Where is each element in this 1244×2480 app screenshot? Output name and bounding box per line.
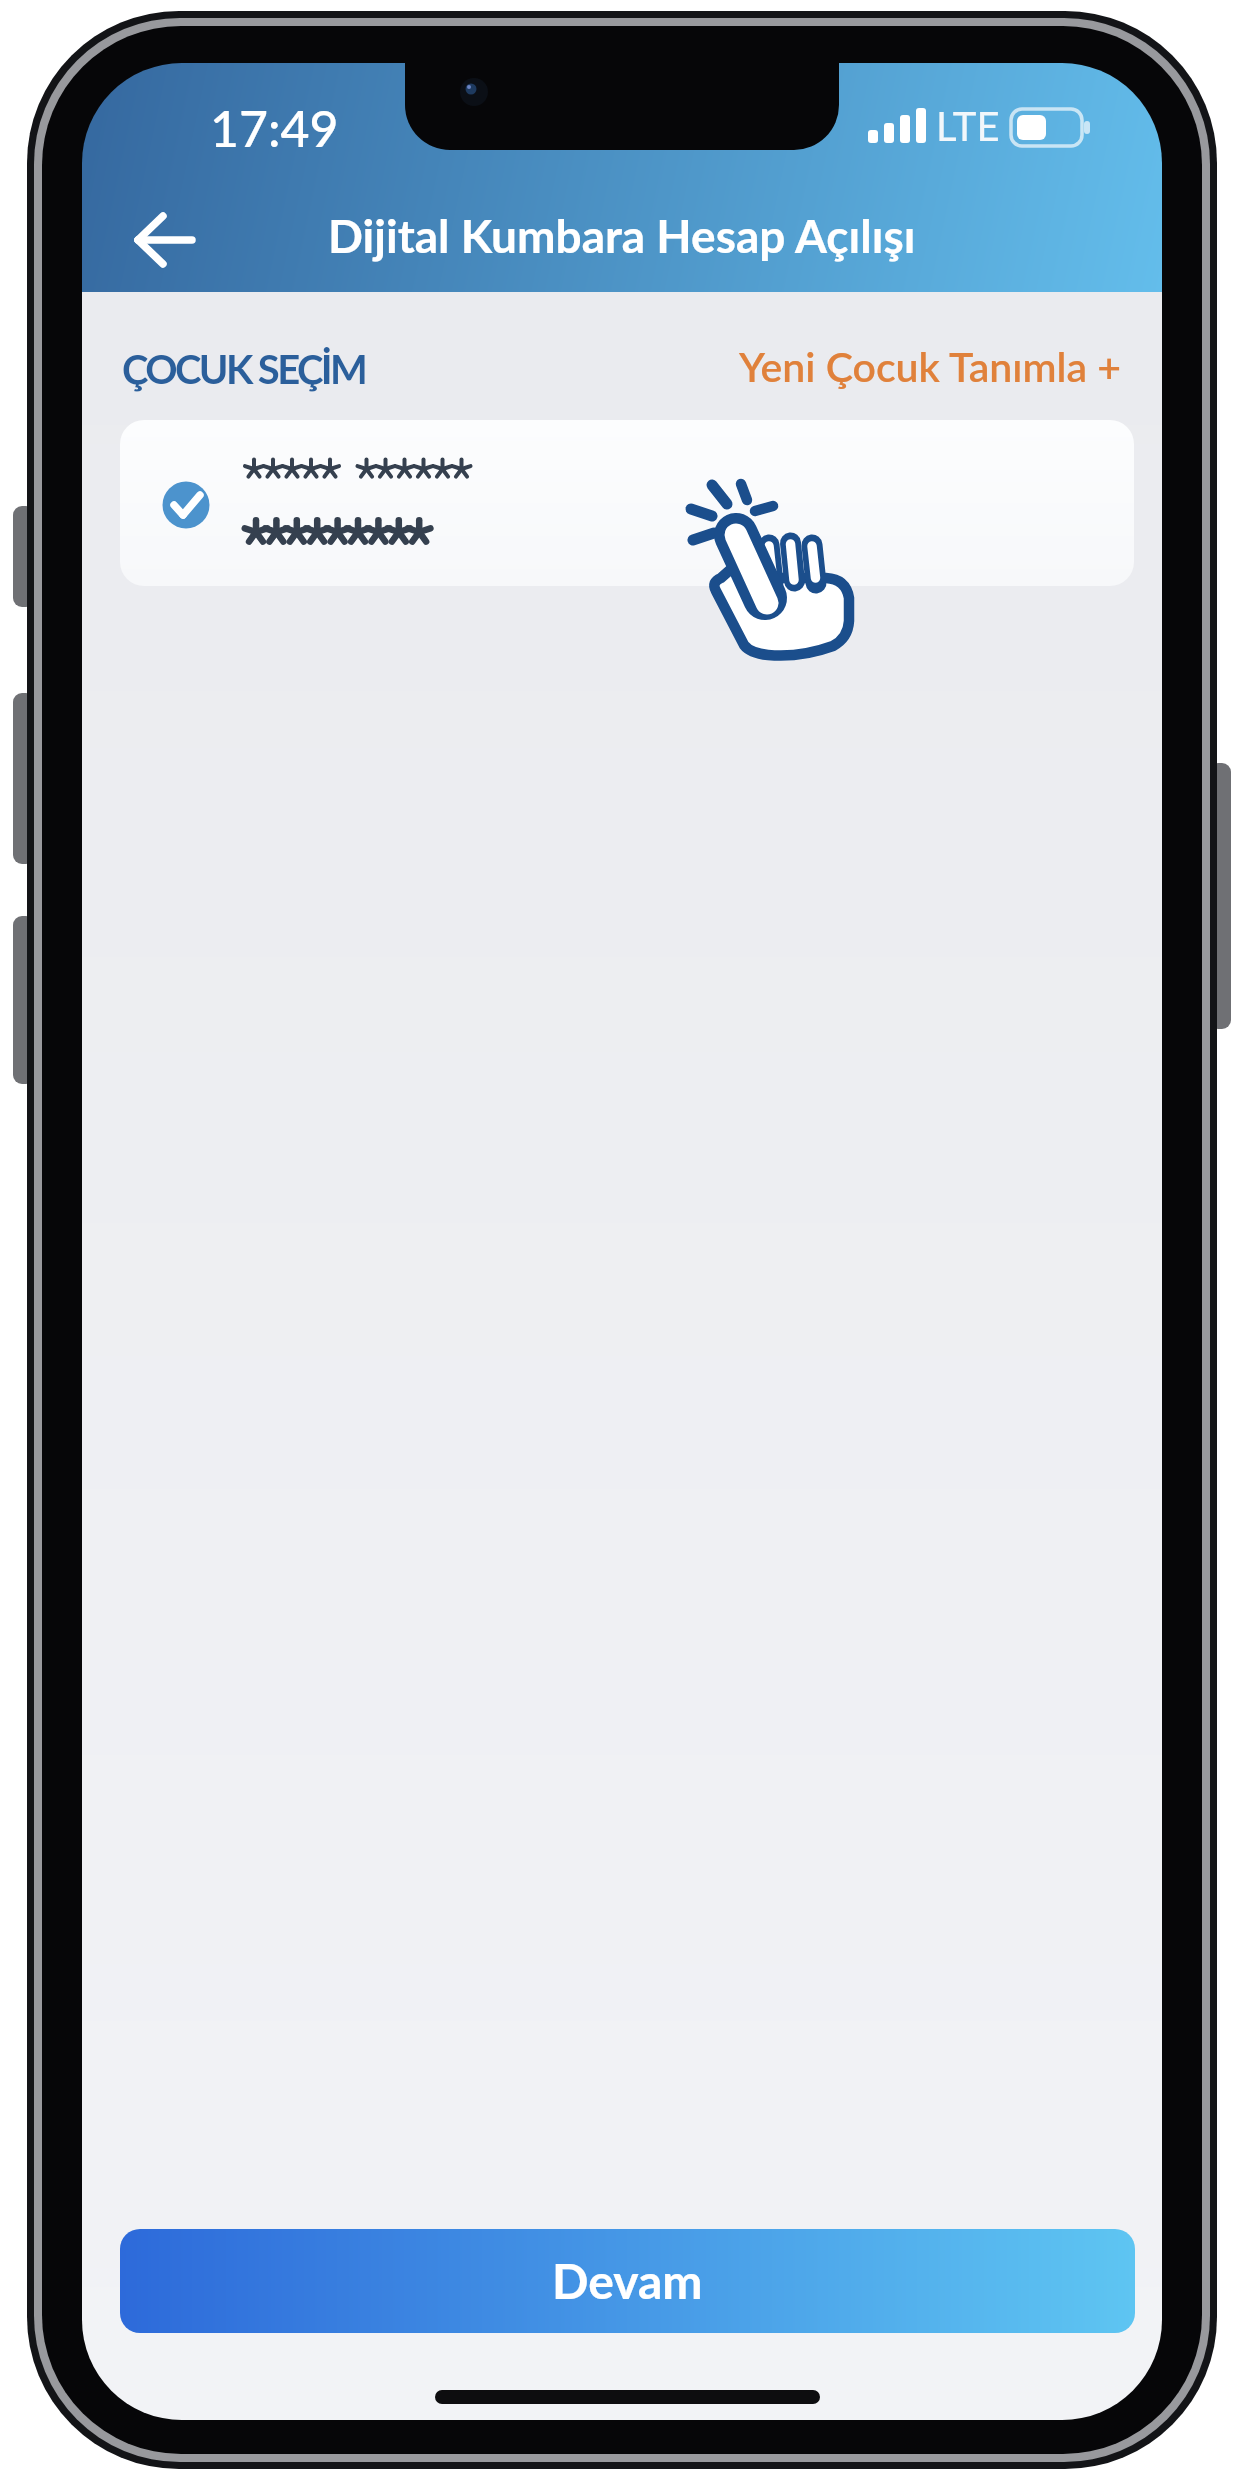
- button[interactable]: Devam: [120, 2229, 1135, 2333]
- button[interactable]: [120, 420, 1134, 586]
- staticText: Devam: [552, 2252, 703, 2310]
- button[interactable]: [120, 206, 210, 274]
- staticText: ÇOCUK SEÇİM: [122, 345, 366, 393]
- staticText: 17:49: [210, 98, 339, 158]
- staticText: LTE: [936, 102, 1000, 150]
- button[interactable]: Yeni Çocuk Tanımla +: [739, 342, 1122, 391]
- staticText: Dijital Kumbara Hesap Açılışı: [328, 208, 916, 263]
